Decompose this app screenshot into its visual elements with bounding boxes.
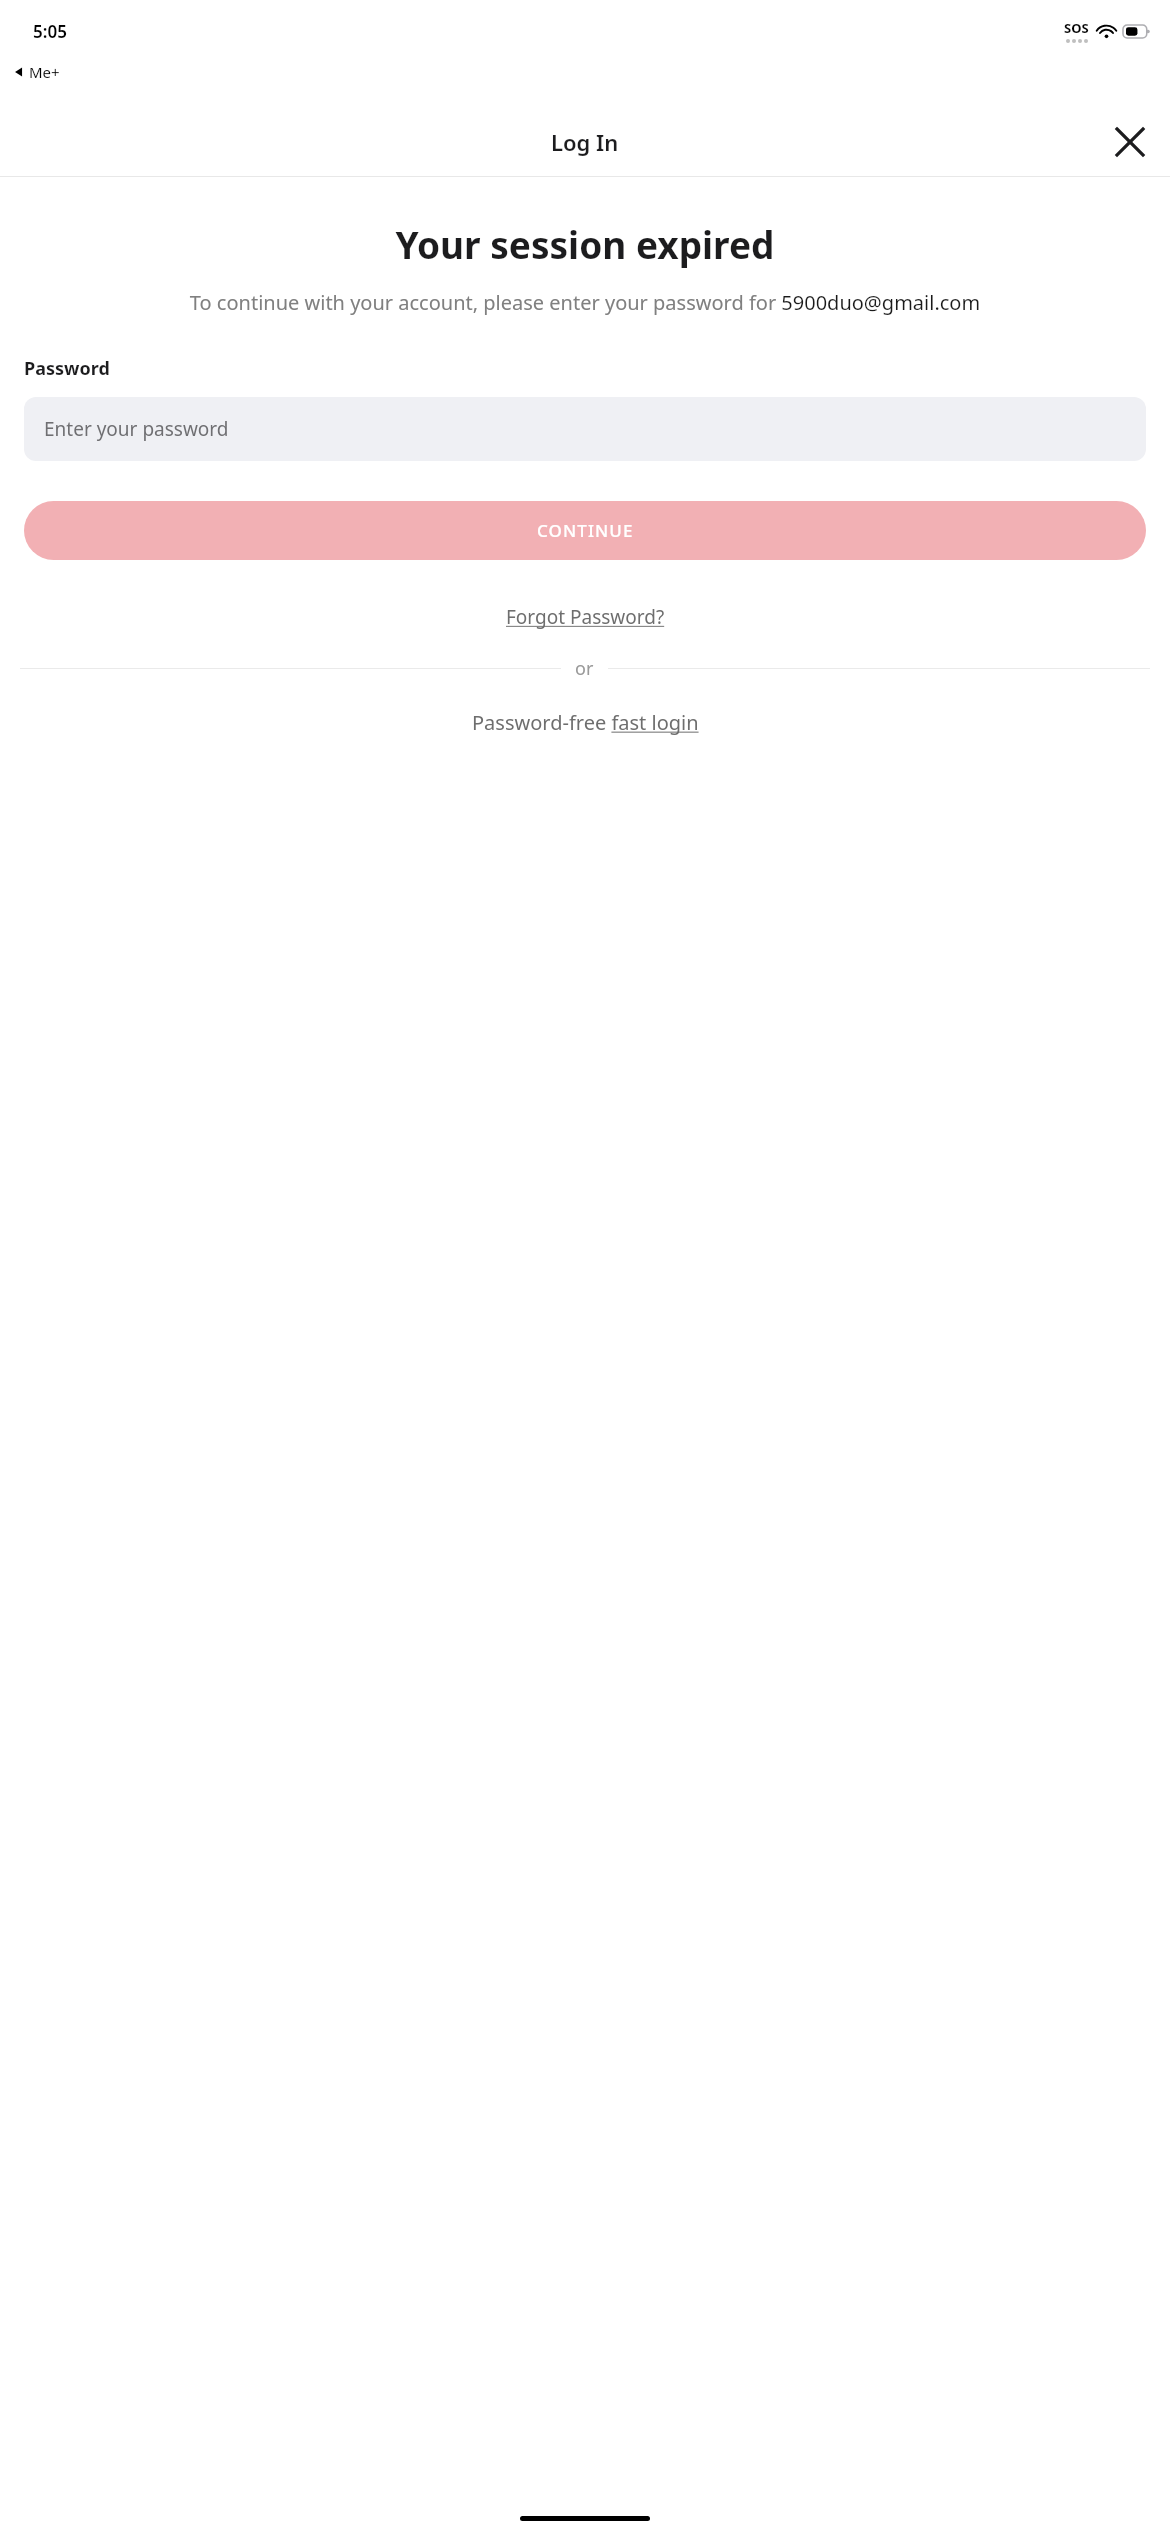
button[interactable]: CONTINUE	[24, 501, 1146, 560]
staticText: Me+	[29, 62, 60, 82]
staticText: Enter your password	[44, 416, 229, 442]
staticText: Forgot Password?	[506, 604, 665, 630]
staticText: CONTINUE	[537, 519, 634, 542]
staticText: Password-free fast login	[472, 709, 699, 736]
staticText: To continue with your account, please en…	[24, 289, 1146, 316]
button[interactable]: Close	[1106, 118, 1154, 166]
button[interactable]: Forgot Password?	[496, 598, 675, 636]
staticText: Password	[24, 356, 110, 381]
button[interactable]: Password-free fast login	[462, 703, 709, 742]
button[interactable]: Me+	[12, 62, 60, 82]
staticText: SOS	[1064, 19, 1089, 37]
staticText: Log In	[551, 127, 619, 157]
button[interactable]: Enter your password	[24, 397, 1146, 461]
staticText: or	[575, 656, 594, 681]
staticText: 5:05	[33, 20, 67, 43]
staticText: Your session expired	[20, 219, 1150, 269]
